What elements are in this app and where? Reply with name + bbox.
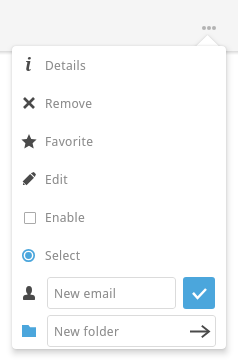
staticText: Details	[45, 57, 86, 73]
button[interactable]: i	[12, 46, 226, 84]
staticText: Edit	[45, 171, 68, 187]
button[interactable]: Select	[12, 236, 226, 274]
button[interactable]: Confirm email	[183, 277, 215, 309]
staticText: New email	[54, 285, 117, 301]
staticText: i	[25, 52, 32, 77]
button[interactable]: Edit	[12, 160, 226, 198]
staticText: Select	[45, 247, 81, 263]
staticText: Favorite	[45, 133, 94, 149]
button[interactable]: New folder	[47, 315, 216, 347]
button[interactable]: New email	[47, 277, 176, 309]
button[interactable]: Favorite	[12, 122, 226, 160]
button[interactable]: Remove	[12, 84, 226, 122]
button[interactable]: Enable	[12, 198, 226, 236]
button[interactable]: More options	[191, 10, 227, 46]
staticText: Remove	[45, 95, 93, 111]
staticText: Enable	[45, 209, 86, 225]
staticText: New folder	[54, 323, 120, 339]
